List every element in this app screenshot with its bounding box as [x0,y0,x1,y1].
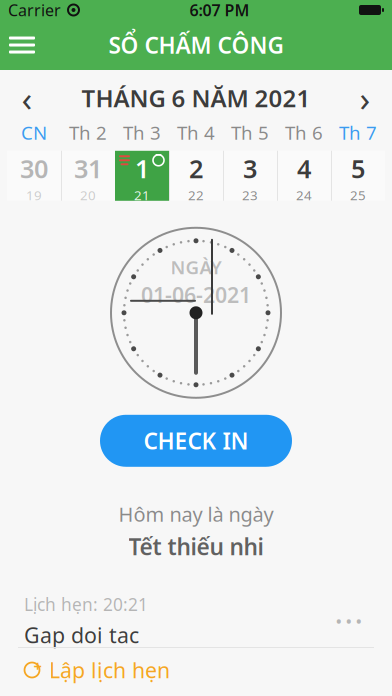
staticText: 31 [74,152,102,185]
staticText: NGÀY [170,255,221,279]
staticText: Tết thiếu nhi [128,531,263,561]
button[interactable]: 30 [7,151,61,201]
staticText: 4 [297,152,311,185]
staticText: 22 [188,186,204,204]
staticText: 1 [135,152,149,185]
staticText: 6:07 PM [189,0,249,21]
staticText: + [33,656,41,676]
staticText: Th 5 [231,120,269,145]
staticText: 30 [20,152,48,185]
staticText: ‹ [21,75,32,121]
staticText: 21 [134,186,150,204]
staticText: CHECK IN [143,426,248,456]
staticText: • • • [336,611,362,631]
button[interactable]: Next month [338,76,392,120]
staticText: Lịch hẹn: 20:21 [24,593,148,616]
staticText: 20 [80,186,96,204]
staticText: SỔ CHẤM CÔNG [108,30,283,60]
button[interactable]: Menu [0,23,44,67]
staticText: Gap doi tac [24,621,139,649]
staticText: 2 [189,152,203,185]
button[interactable]: 4 [277,151,331,201]
staticText: Lập lịch hẹn [49,656,170,684]
staticText: 24 [296,186,312,204]
button[interactable]: 2 [169,151,223,201]
button[interactable]: 31 [61,151,115,201]
button[interactable]: + [0,648,392,692]
button[interactable]: Previous month [0,76,54,120]
button[interactable]: Lịch hẹn: 20:21 [0,595,392,647]
staticText: 23 [242,186,258,204]
staticText: Th 6 [285,120,323,145]
button[interactable]: CHECK IN [100,415,292,467]
staticText: Hôm nay là ngày [118,501,273,527]
staticText: Th 4 [177,120,215,145]
staticText: Carrier [8,0,61,21]
staticText: 01-06-2021 [141,280,251,309]
staticText: 25 [350,186,366,204]
staticText: Th 2 [69,120,107,145]
staticText: Th 3 [123,120,161,145]
staticText: THÁNG 6 NĂM 2021 [81,82,310,114]
button[interactable]: 1 [115,151,169,201]
staticText: Th 7 [339,120,377,145]
staticText: CN [21,120,47,145]
staticText: › [359,75,370,121]
staticText: 5 [351,152,365,185]
staticText: 19 [26,186,42,204]
button[interactable]: 3 [223,151,277,201]
staticText: 3 [243,152,257,185]
button[interactable]: 5 [331,151,385,201]
